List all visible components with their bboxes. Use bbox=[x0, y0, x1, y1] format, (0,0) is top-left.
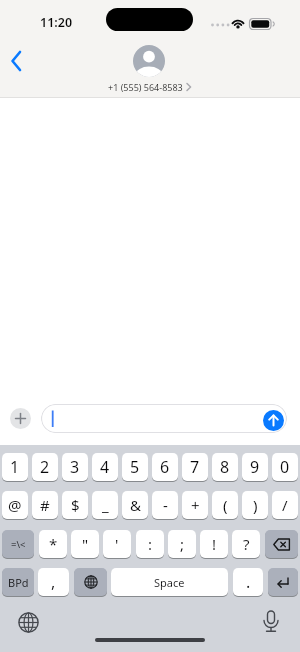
button[interactable]: _ bbox=[92, 491, 118, 519]
button[interactable]: ; bbox=[168, 530, 196, 558]
staticText: ? bbox=[243, 534, 250, 554]
button[interactable]: Space bbox=[111, 568, 228, 596]
staticText: 2 bbox=[40, 456, 50, 478]
staticText: ! bbox=[212, 534, 217, 554]
staticText: 8 bbox=[220, 456, 230, 478]
button[interactable]: @ bbox=[2, 491, 28, 519]
button[interactable] bbox=[263, 410, 284, 431]
staticText: & bbox=[130, 495, 141, 515]
button[interactable]: ' bbox=[103, 530, 131, 558]
staticText: Space bbox=[154, 575, 185, 590]
button[interactable]: 9 bbox=[242, 453, 268, 481]
staticText: / bbox=[282, 495, 288, 515]
staticText: 7 bbox=[190, 456, 200, 478]
button[interactable]: BPd bbox=[2, 568, 34, 596]
button[interactable]: 5 bbox=[122, 453, 148, 481]
button[interactable]: . bbox=[233, 568, 263, 596]
button[interactable]: 6 bbox=[152, 453, 178, 481]
staticText: # bbox=[40, 495, 50, 515]
staticText: +1 (555) 564-8583 bbox=[108, 81, 183, 93]
button[interactable]: - bbox=[152, 491, 178, 519]
staticText: 4 bbox=[100, 456, 110, 478]
button[interactable] bbox=[10, 408, 31, 429]
button[interactable]: ( bbox=[212, 491, 238, 519]
staticText: + bbox=[191, 495, 200, 515]
staticText: 5 bbox=[130, 456, 140, 478]
button[interactable]: / bbox=[272, 491, 298, 519]
button[interactable]: 0 bbox=[272, 453, 298, 481]
staticText: 6 bbox=[160, 456, 170, 478]
staticText: @ bbox=[8, 495, 22, 515]
staticText: , bbox=[51, 571, 56, 593]
button[interactable]: & bbox=[122, 491, 148, 519]
staticText: ; bbox=[180, 534, 185, 554]
button[interactable]: =\< bbox=[2, 530, 34, 558]
button[interactable] bbox=[41, 404, 287, 433]
staticText: 1 bbox=[10, 456, 20, 478]
button[interactable]: ! bbox=[200, 530, 228, 558]
button[interactable]: $ bbox=[62, 491, 88, 519]
button[interactable]: # bbox=[32, 491, 58, 519]
button[interactable] bbox=[4, 46, 30, 76]
staticText: : bbox=[148, 534, 153, 554]
staticText: $ bbox=[71, 495, 80, 515]
button[interactable]: 4 bbox=[92, 453, 118, 481]
button[interactable]: 1 bbox=[2, 453, 28, 481]
staticText: . bbox=[246, 571, 251, 593]
button[interactable]: 2 bbox=[32, 453, 58, 481]
staticText: =\< bbox=[11, 538, 26, 551]
staticText: ) bbox=[253, 495, 258, 515]
staticText: ( bbox=[223, 495, 228, 515]
button[interactable] bbox=[256, 606, 286, 638]
staticText: BPd bbox=[8, 575, 29, 590]
button[interactable]: 8 bbox=[212, 453, 238, 481]
staticText: - bbox=[163, 495, 168, 515]
button[interactable]: " bbox=[71, 530, 99, 558]
button[interactable] bbox=[268, 568, 298, 596]
staticText: 11:20 bbox=[40, 14, 73, 31]
staticText: " bbox=[82, 534, 89, 554]
staticText: 9 bbox=[250, 456, 260, 478]
button[interactable]: + bbox=[182, 491, 208, 519]
button[interactable] bbox=[133, 45, 165, 77]
button[interactable]: ) bbox=[242, 491, 268, 519]
staticText: 0 bbox=[280, 456, 290, 478]
button[interactable] bbox=[74, 568, 107, 596]
button[interactable] bbox=[13, 607, 44, 638]
button[interactable]: 3 bbox=[62, 453, 88, 481]
button[interactable]: 7 bbox=[182, 453, 208, 481]
button[interactable]: * bbox=[39, 530, 67, 558]
button[interactable]: +1 (555) 564-8583 bbox=[108, 81, 192, 93]
staticText: * bbox=[49, 534, 58, 554]
staticText: ' bbox=[115, 534, 119, 554]
button[interactable] bbox=[265, 530, 298, 558]
staticText: 3 bbox=[70, 456, 80, 478]
staticText: _ bbox=[102, 495, 109, 515]
button[interactable]: ? bbox=[232, 530, 260, 558]
button[interactable]: : bbox=[136, 530, 164, 558]
button[interactable]: , bbox=[38, 568, 69, 596]
